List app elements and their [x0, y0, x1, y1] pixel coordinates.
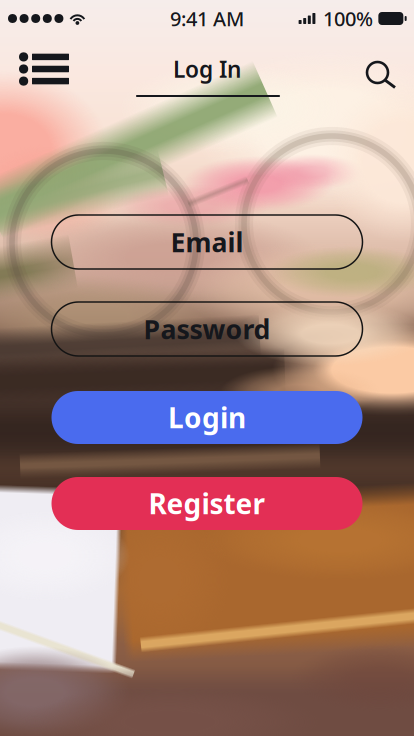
button[interactable]: Login	[51, 391, 362, 444]
button[interactable]: Email	[51, 215, 362, 269]
button[interactable]: Password	[51, 302, 362, 356]
button[interactable]: Search	[355, 53, 407, 97]
staticText: 9:41 AM	[170, 5, 244, 32]
staticText: Register	[148, 485, 265, 522]
button[interactable]: Register	[51, 477, 362, 530]
staticText: Email	[170, 224, 243, 260]
staticText: 100%	[323, 5, 373, 32]
staticText: Log In	[173, 54, 241, 84]
staticText: Login	[168, 399, 246, 436]
button[interactable]: Menu	[13, 47, 75, 91]
staticText: Password	[143, 311, 270, 347]
